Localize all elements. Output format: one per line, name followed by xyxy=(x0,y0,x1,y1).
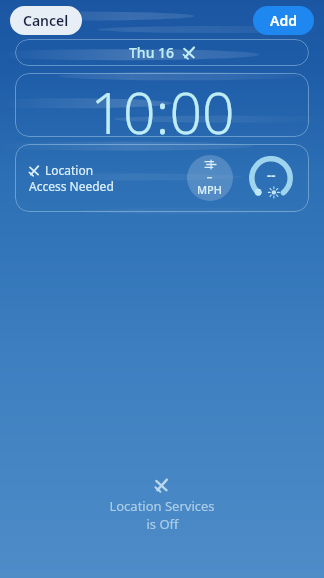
button[interactable]: Add xyxy=(253,6,314,35)
button[interactable]: 10:00 xyxy=(15,73,309,137)
button[interactable]: Speed xyxy=(187,155,233,201)
staticText: Location xyxy=(45,162,94,178)
button[interactable]: Brightness gauge xyxy=(247,154,295,202)
staticText: Cancel xyxy=(23,11,69,30)
staticText: Thu 16 xyxy=(129,43,175,62)
button[interactable]: Cancel xyxy=(10,6,82,35)
staticText: Location Services xyxy=(109,497,215,515)
staticText: Add xyxy=(270,11,297,30)
button[interactable]: Thu 16 xyxy=(15,39,309,66)
staticText: Access Needed xyxy=(29,178,114,194)
staticText: 10:00 xyxy=(90,73,235,137)
staticText: -- xyxy=(207,171,213,182)
staticText: is Off xyxy=(146,515,179,533)
button[interactable]: Location xyxy=(15,144,309,212)
staticText: MPH xyxy=(197,182,223,197)
staticText: -- xyxy=(267,166,276,184)
